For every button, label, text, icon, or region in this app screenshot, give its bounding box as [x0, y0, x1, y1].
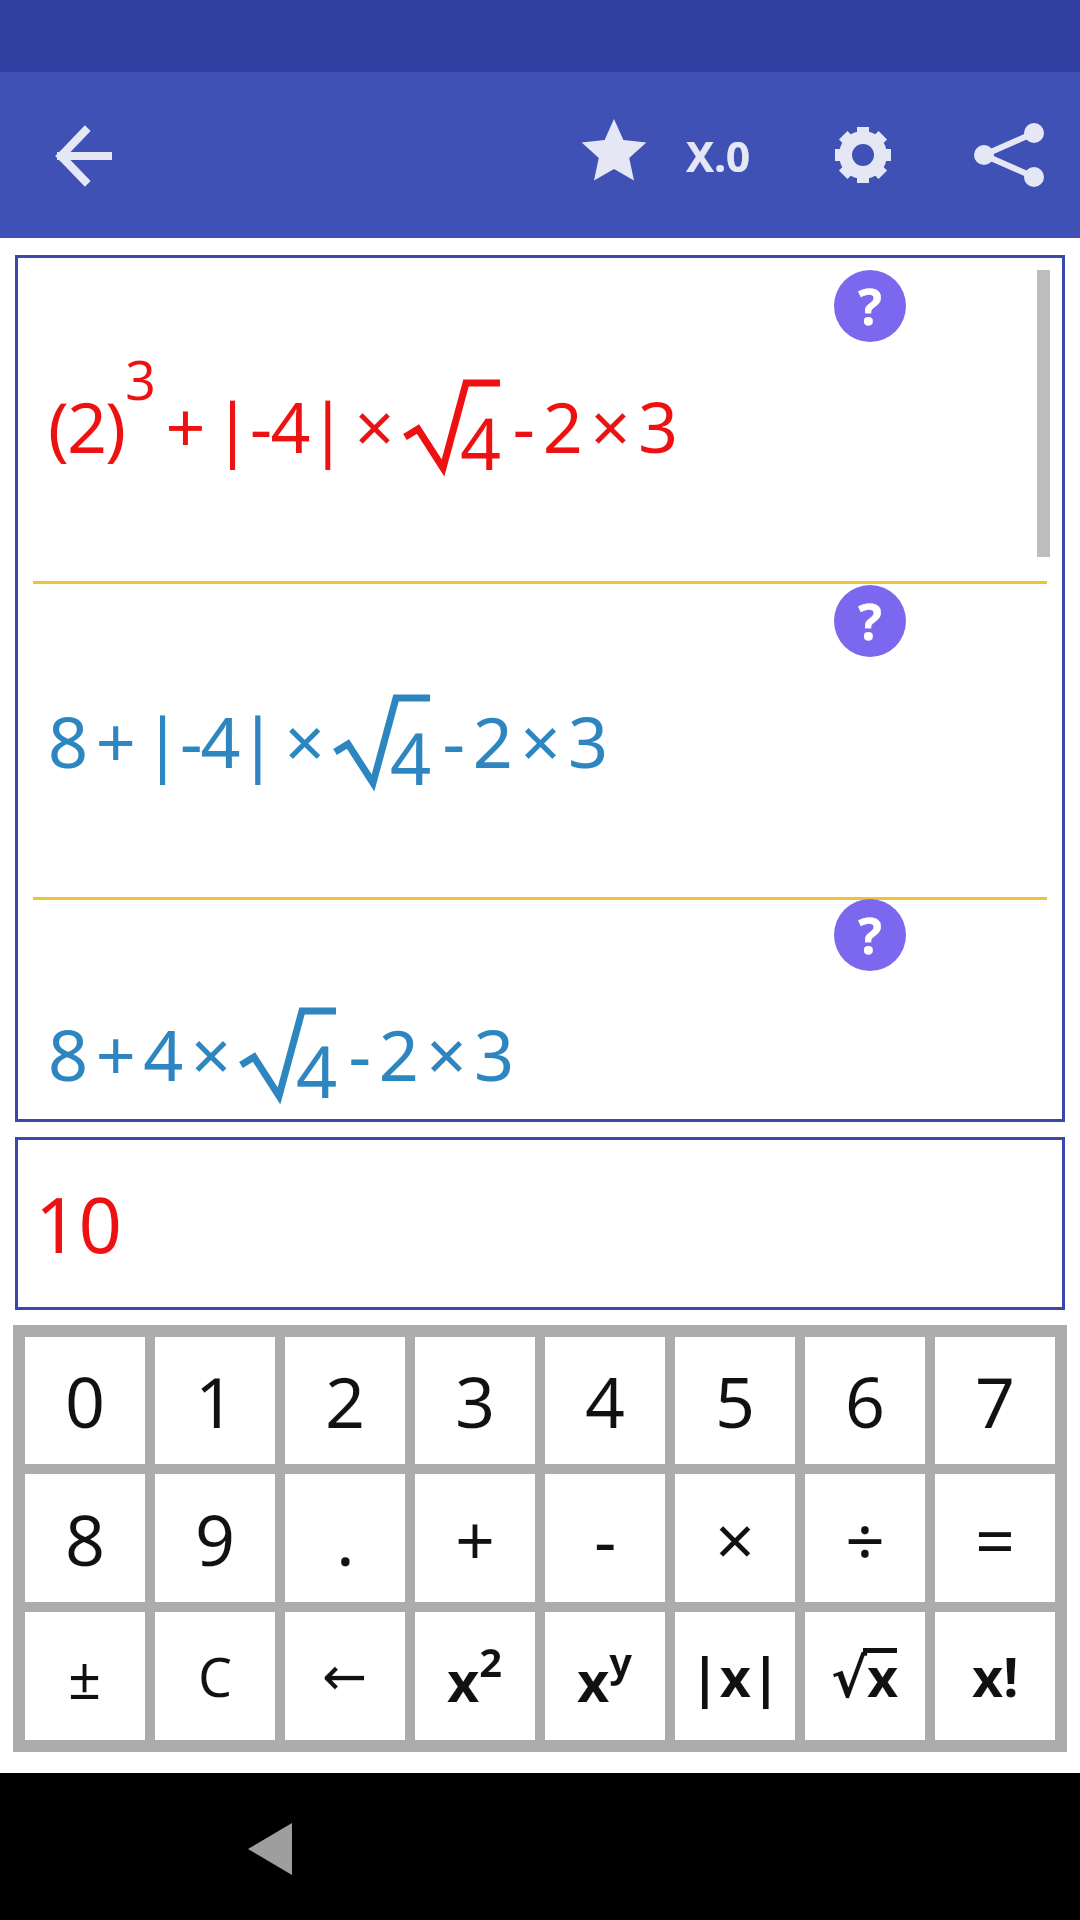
staticText: 4 [390, 708, 432, 804]
staticText: ÷ [845, 1491, 886, 1586]
staticText: (2) [48, 378, 125, 473]
button[interactable]: X.0 [658, 125, 778, 185]
staticText: 2 [325, 1353, 366, 1448]
staticText: xy [577, 1634, 633, 1719]
staticText: 4 [460, 393, 502, 489]
staticText: |x| [690, 1639, 781, 1713]
button[interactable]: |x| [675, 1612, 795, 1740]
staticText: = [975, 1491, 1016, 1586]
button[interactable]: xy [545, 1612, 665, 1740]
staticText: 4 [296, 1021, 338, 1117]
staticText: 3 [455, 1353, 496, 1448]
staticText: x2 [447, 1634, 503, 1719]
staticText: 8 [65, 1491, 106, 1586]
button[interactable] [570, 111, 658, 199]
button[interactable] [230, 1803, 316, 1893]
staticText: 8 + 4 × [48, 1006, 239, 1101]
staticText: - 2 × 3 [503, 378, 677, 473]
staticText: X.0 [686, 127, 750, 184]
button[interactable]: x2 [415, 1612, 535, 1740]
staticText: 5 [715, 1353, 756, 1448]
button[interactable]: 9 [155, 1474, 275, 1602]
staticText: . [336, 1491, 355, 1586]
staticText: 3 [125, 342, 156, 416]
staticText: × [715, 1491, 756, 1586]
button[interactable]: + [415, 1474, 535, 1602]
button[interactable]: ← [285, 1612, 405, 1740]
button[interactable]: C [155, 1612, 275, 1740]
staticText: - 2 × 3 [339, 1006, 513, 1101]
staticText: 4 [585, 1353, 626, 1448]
staticText: 0 [65, 1353, 106, 1448]
button[interactable]: = [935, 1474, 1055, 1602]
button[interactable]: 5 [675, 1337, 795, 1464]
staticText: 6 [845, 1353, 886, 1448]
staticText: ← [322, 1645, 368, 1708]
button[interactable]: 8 [25, 1474, 145, 1602]
staticText: ± [68, 1637, 102, 1716]
staticText: - 2 × 3 [433, 693, 607, 788]
button[interactable]: 1 [155, 1337, 275, 1464]
button[interactable]: x! [935, 1612, 1055, 1740]
staticText: + [455, 1491, 496, 1586]
button[interactable]: 3 [415, 1337, 535, 1464]
staticText: ? [858, 272, 882, 340]
button[interactable]: × [675, 1474, 795, 1602]
staticText: √x [831, 1639, 899, 1713]
button[interactable]: - [545, 1474, 665, 1602]
button[interactable]: ? [834, 899, 906, 971]
button[interactable] [40, 112, 128, 200]
staticText: 9 [195, 1491, 236, 1586]
staticText: 8 + |-4| × [48, 693, 333, 788]
staticText: C [198, 1639, 233, 1713]
staticText: ? [858, 587, 882, 655]
staticText: 10 [35, 1172, 122, 1276]
button[interactable]: 6 [805, 1337, 925, 1464]
staticText: - [594, 1491, 617, 1586]
staticText: 1 [195, 1353, 236, 1448]
button[interactable]: 0 [25, 1337, 145, 1464]
button[interactable]: 7 [935, 1337, 1055, 1464]
button[interactable] [819, 111, 907, 199]
button[interactable]: ? [834, 270, 906, 342]
button[interactable]: ÷ [805, 1474, 925, 1602]
button[interactable]: √x [805, 1612, 925, 1740]
button[interactable]: ? [834, 585, 906, 657]
staticText: ? [858, 901, 882, 969]
button[interactable]: ± [25, 1612, 145, 1740]
button[interactable]: 2 [285, 1337, 405, 1464]
staticText: + |-4| × [156, 378, 403, 473]
button[interactable]: 4 [545, 1337, 665, 1464]
button[interactable]: . [285, 1474, 405, 1602]
staticText: x! [972, 1639, 1019, 1713]
staticText: 7 [975, 1353, 1016, 1448]
button[interactable] [963, 111, 1051, 199]
